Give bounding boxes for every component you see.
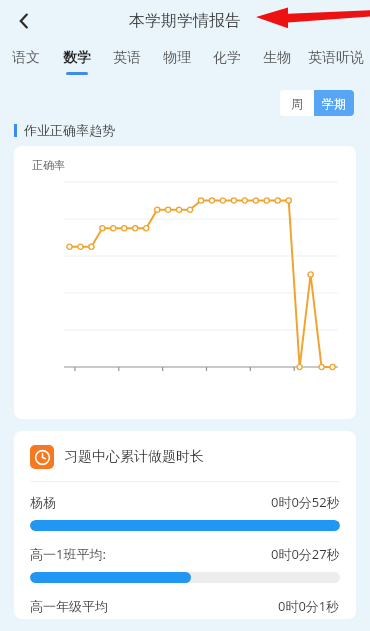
button[interactable]: 学期 bbox=[314, 90, 354, 116]
button[interactable]: 语文 bbox=[0, 42, 51, 82]
button[interactable]: 英语 bbox=[102, 42, 152, 82]
button[interactable]: 化学 bbox=[202, 42, 252, 82]
button[interactable]: 生物 bbox=[252, 42, 302, 82]
staticText: 作业正确率趋势 bbox=[24, 122, 115, 138]
staticText: 杨杨 bbox=[30, 494, 56, 510]
staticText: 本学期学情报告 bbox=[129, 11, 241, 31]
staticText: 高一1班平均: bbox=[30, 545, 106, 563]
staticText: 习题中心累计做题时长 bbox=[64, 448, 204, 466]
staticText: 0时0分1秒 bbox=[278, 597, 340, 615]
button[interactable]: 数学 bbox=[51, 42, 102, 82]
staticText: 语文 bbox=[12, 49, 40, 67]
staticText: 0时0分52秒 bbox=[271, 493, 340, 511]
staticText: 英语 bbox=[113, 49, 141, 67]
staticText: 化学 bbox=[213, 49, 241, 67]
staticText: 周 bbox=[291, 96, 303, 111]
staticText: 数学 bbox=[63, 49, 91, 67]
button[interactable]: 物理 bbox=[152, 42, 202, 82]
staticText: 物理 bbox=[163, 49, 191, 67]
staticText: 生物 bbox=[263, 49, 291, 67]
staticText: 高一年级平均 bbox=[30, 598, 108, 614]
staticText: 正确率 bbox=[32, 158, 65, 172]
staticText: 英语听说 bbox=[308, 49, 364, 67]
button[interactable]: 英语听说 bbox=[302, 42, 370, 82]
staticText: 0时0分27秒 bbox=[271, 545, 340, 563]
staticText: 学期 bbox=[322, 96, 346, 111]
button[interactable]: Back bbox=[6, 3, 42, 39]
button[interactable]: 周 bbox=[280, 90, 314, 116]
